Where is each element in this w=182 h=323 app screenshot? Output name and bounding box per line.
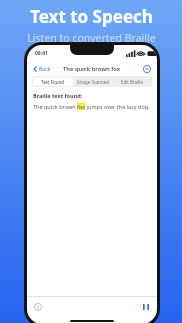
- staticText: Text to Speech: [30, 5, 153, 28]
- button[interactable]: Back: [31, 63, 53, 74]
- button[interactable]: Text Found: [33, 77, 73, 86]
- staticText: Text Found: [41, 79, 65, 85]
- button[interactable]: Remove: [141, 63, 152, 74]
- button[interactable]: Image Scanned: [73, 77, 112, 86]
- button[interactable]: Edit Braille: [112, 77, 151, 86]
- staticText: Listen to converted Braille: [27, 31, 156, 45]
- staticText: Image Scanned: [77, 79, 109, 85]
- button[interactable]: Pause: [140, 301, 152, 313]
- staticText: 09:41: [35, 50, 48, 57]
- staticText: Back: [39, 65, 51, 72]
- staticText: Braille text found:: [33, 92, 83, 99]
- staticText: Edit Braille: [121, 79, 143, 85]
- button[interactable]: Info: [32, 301, 44, 313]
- staticText: The quick brown fox: [63, 65, 121, 73]
- staticText: The quick brown fox jumps over the lazy …: [33, 103, 150, 110]
